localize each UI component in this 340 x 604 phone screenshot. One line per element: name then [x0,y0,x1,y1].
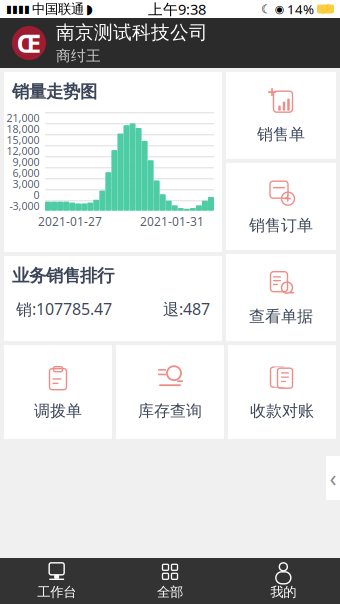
staticText: 9,000 [12,155,39,169]
staticText: 18,000 [6,122,39,136]
staticText: 销售单 [257,125,305,144]
staticText: 销量走势图 [12,81,97,102]
staticText: ◗ [86,1,93,16]
staticText: ⚡ [319,4,331,14]
staticText: 我的 [270,584,296,600]
staticText: 销售订单 [249,216,313,235]
staticText: 查看单据 [249,307,313,326]
button[interactable]: 收款对账 [228,345,336,439]
staticText: 2021-01-31 [140,213,204,229]
staticText: ◉ [275,3,284,15]
staticText: 2021-01-27 [38,213,102,229]
staticText: + [284,190,292,207]
staticText: 全部 [157,584,183,600]
staticText: 6,000 [12,166,39,180]
staticText: 15,000 [6,133,39,147]
button[interactable]: 工作台 [0,558,113,604]
staticText: 南京测试科技公司 [56,21,208,44]
staticText: 3,000 [12,177,39,191]
staticText: 商纣王 [56,47,101,65]
staticText: ▮▮▮▮ [6,3,30,15]
button[interactable]: 库存查询 [116,345,224,439]
staticText: Œ [16,26,41,60]
staticText: 销:107785.47 [16,298,112,319]
staticText: 中国联通 [32,1,84,17]
button[interactable]: 销量走势图 [4,72,222,252]
staticText: 业务销售排行 [12,265,114,286]
staticText: 12,000 [6,144,39,158]
button[interactable]: + [226,72,336,159]
staticText: 收款对账 [250,401,314,421]
button[interactable]: 展开侧边栏 [326,456,340,500]
button[interactable]: 调拨单 [4,345,112,439]
button[interactable]: + [226,163,336,250]
staticText: 21,000 [6,111,39,125]
staticText: + [267,81,276,102]
staticText: 14% [287,0,314,18]
staticText: 调拨单 [34,401,82,421]
staticText: 上午9:38 [148,0,206,19]
staticText: -3,000 [9,199,39,213]
staticText: 库存查询 [138,401,202,421]
button[interactable]: 全部 [113,558,227,604]
staticText: ☾ [261,2,272,16]
staticText: ‹ [329,463,336,493]
staticText: 0 [33,188,39,202]
staticText: 退:487 [163,298,210,319]
button[interactable]: 业务销售排行 [4,256,222,341]
button[interactable]: 我的 [227,558,340,604]
staticText: 工作台 [37,584,76,600]
button[interactable]: 查看单据 [226,254,336,341]
